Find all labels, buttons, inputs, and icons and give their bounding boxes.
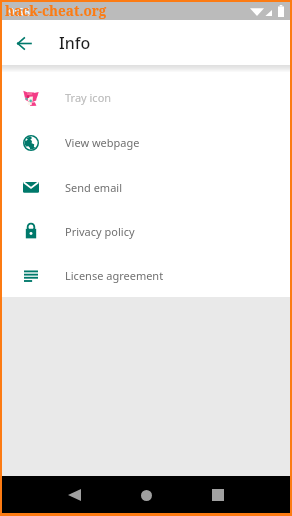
button[interactable]: Tray icon [2,75,290,120]
staticText: hack-cheat.org [5,2,107,20]
button[interactable]: Send email [2,165,290,209]
staticText: View webpage [65,135,140,150]
staticText: License agreement [65,268,164,283]
button[interactable]: Recent apps [203,480,233,510]
staticText: Tray icon [65,90,112,105]
button[interactable]: Privacy policy [2,209,290,253]
button[interactable]: View webpage [2,120,290,165]
button[interactable]: Navigate up [2,21,46,65]
staticText: Send email [65,180,123,195]
staticText: Privacy policy [65,224,135,239]
staticText: Info [59,32,91,54]
button[interactable]: Home [131,480,161,510]
button[interactable]: Back [59,480,89,510]
staticText: 9:56 [8,4,30,19]
button[interactable]: License agreement [2,253,290,297]
